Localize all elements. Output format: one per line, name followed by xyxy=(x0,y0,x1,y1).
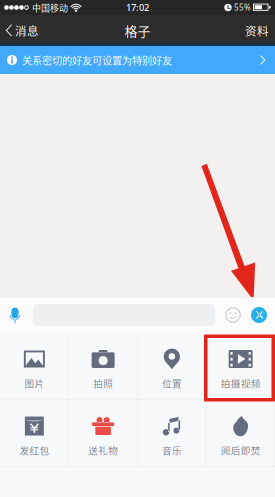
staticText: 发红包 xyxy=(19,443,49,457)
button[interactable]: 发红包 xyxy=(0,400,69,467)
button[interactable]: 拍照 xyxy=(69,333,138,400)
button[interactable]: 送礼物 xyxy=(69,400,138,467)
button[interactable]: 关系密切的好友可设置为特别好友 xyxy=(0,46,275,74)
staticText: 消息 xyxy=(15,22,39,39)
button[interactable]: Close attachment panel xyxy=(248,297,270,333)
staticText: 音乐 xyxy=(162,443,182,457)
staticText: 拍照 xyxy=(93,376,113,390)
staticText: 关系密切的好友可设置为特别好友 xyxy=(22,53,172,67)
staticText: 位置 xyxy=(162,376,182,390)
staticText: 55% xyxy=(234,2,251,13)
button[interactable]: Emoji keyboard xyxy=(222,297,244,333)
button[interactable]: 拍摄视频 xyxy=(206,333,275,400)
staticText: 送礼物 xyxy=(88,443,118,457)
staticText: 中国移动 xyxy=(32,1,68,14)
button[interactable]: 资料 xyxy=(239,15,275,46)
staticText: 资料 xyxy=(245,22,269,39)
staticText: 拍摄视频 xyxy=(221,376,261,390)
staticText: 图片 xyxy=(24,376,44,390)
staticText: 17:02 xyxy=(126,1,149,14)
button[interactable]: 位置 xyxy=(137,333,206,400)
button[interactable]: 音乐 xyxy=(137,400,206,467)
button[interactable]: 图片 xyxy=(0,333,69,400)
button[interactable]: Voice message xyxy=(0,297,30,333)
button[interactable]: 阅后即焚 xyxy=(206,400,275,467)
staticText: 格子 xyxy=(124,21,150,40)
button[interactable]: 消息 xyxy=(0,15,45,46)
staticText: 阅后即焚 xyxy=(221,443,261,457)
